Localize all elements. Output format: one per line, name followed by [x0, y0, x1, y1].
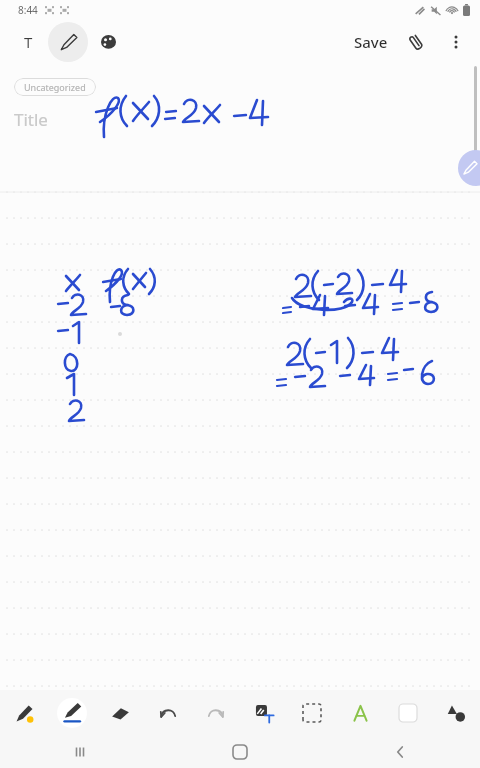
button[interactable]: Text recognition	[336, 690, 384, 736]
button[interactable]: Insert	[240, 690, 288, 736]
button[interactable]: Page style	[384, 690, 432, 736]
button[interactable]: Assist pen	[458, 150, 480, 186]
button[interactable]: Select	[288, 690, 336, 736]
button[interactable]: Recent apps	[0, 736, 160, 768]
button[interactable]: Home	[160, 736, 320, 768]
button[interactable]: Pen favourite	[0, 690, 48, 736]
button[interactable]: Palette	[88, 22, 128, 62]
button[interactable]: Attach	[396, 22, 436, 62]
staticText: T	[24, 32, 33, 52]
button[interactable]: Pen	[48, 690, 96, 736]
button[interactable]: Undo	[144, 690, 192, 736]
button[interactable]: Eraser	[96, 690, 144, 736]
button[interactable]: Redo	[192, 690, 240, 736]
button[interactable]: Text mode	[8, 22, 48, 62]
staticText: Uncategorized	[24, 81, 86, 93]
button[interactable]: Save	[346, 26, 396, 58]
staticText: Title	[14, 108, 48, 131]
staticText: 8:44	[18, 3, 38, 17]
button[interactable]: Shapes	[432, 690, 480, 736]
button[interactable]: Back	[320, 736, 480, 768]
staticText: Save	[354, 32, 388, 52]
button[interactable]: Handwriting mode	[48, 22, 88, 62]
button[interactable]: More options	[436, 22, 476, 62]
button[interactable]: Uncategorized	[14, 78, 96, 96]
